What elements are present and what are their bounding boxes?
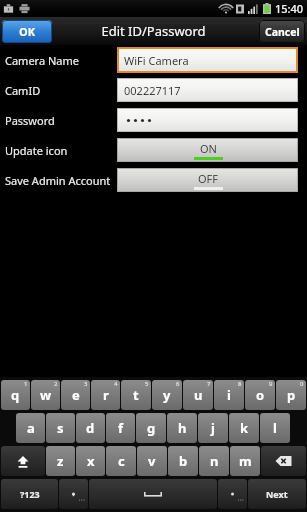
- button[interactable]: v: [137, 446, 167, 476]
- button[interactable]: ?123: [1, 479, 58, 509]
- button[interactable]: [117, 108, 298, 132]
- button[interactable]: Toggle OFF: [117, 168, 298, 192]
- staticText: d: [86, 419, 95, 437]
- staticText: y: [163, 386, 171, 404]
- button[interactable]: Shift: [1, 446, 45, 476]
- staticText: l: [273, 419, 277, 437]
- button[interactable]: 0: [276, 380, 306, 410]
- staticText: t: [133, 386, 139, 404]
- staticText: 9: [269, 380, 273, 388]
- staticText: WiFi Camera: [124, 53, 189, 68]
- button[interactable]: m: [230, 446, 260, 476]
- staticText: b: [179, 452, 188, 470]
- staticText: z: [57, 452, 64, 470]
- button[interactable]: 2: [31, 380, 60, 410]
- button[interactable]: z: [46, 446, 75, 476]
- staticText: Edit ID/Password: [101, 22, 206, 40]
- staticText: 002227117: [124, 83, 181, 98]
- staticText: Cancel: [265, 25, 300, 39]
- button[interactable]: b: [168, 446, 198, 476]
- staticText: a: [27, 419, 35, 437]
- staticText: h: [178, 419, 187, 437]
- button[interactable]: Next: [248, 479, 306, 509]
- button[interactable]: l: [260, 413, 290, 443]
- button[interactable]: Space: [89, 479, 217, 509]
- staticText: OK: [19, 24, 36, 39]
- staticText: OFF: [198, 171, 219, 186]
- staticText: Update icon: [5, 143, 68, 158]
- staticText: 7: [207, 380, 211, 388]
- button[interactable]: Toggle ON: [117, 138, 298, 162]
- staticText: 0: [300, 380, 304, 388]
- staticText: p: [287, 386, 296, 404]
- staticText: w: [40, 386, 52, 404]
- button[interactable]: 6: [152, 380, 182, 410]
- button[interactable]: c: [106, 446, 136, 476]
- button[interactable]: 7: [183, 380, 213, 410]
- staticText: g: [147, 419, 156, 437]
- staticText: 6: [176, 380, 180, 388]
- button[interactable]: 8: [214, 380, 244, 410]
- staticText: Next: [266, 488, 288, 500]
- button[interactable]: k: [229, 413, 259, 443]
- staticText: v: [148, 452, 156, 470]
- button[interactable]: j: [198, 413, 228, 443]
- staticText: u: [194, 386, 203, 404]
- button[interactable]: x: [76, 446, 105, 476]
- button[interactable]: d: [76, 413, 105, 443]
- staticText: m: [239, 452, 252, 470]
- staticText: 4: [114, 380, 118, 388]
- button[interactable]: Comma: [59, 479, 88, 509]
- staticText: j: [211, 419, 215, 437]
- staticText: Save Admin Account: [5, 173, 111, 188]
- button[interactable]: g: [136, 413, 166, 443]
- button[interactable]: 1: [1, 380, 30, 410]
- staticText: x: [87, 452, 95, 470]
- button[interactable]: OK: [2, 20, 52, 43]
- staticText: o: [256, 386, 265, 404]
- staticText: 3: [84, 380, 88, 388]
- staticText: 1: [24, 380, 28, 388]
- staticText: ?123: [20, 488, 40, 500]
- button[interactable]: Cancel: [259, 20, 305, 43]
- staticText: e: [72, 386, 80, 404]
- staticText: f: [118, 419, 124, 437]
- staticText: ON: [200, 141, 217, 156]
- button[interactable]: s: [46, 413, 75, 443]
- staticText: Password: [5, 113, 55, 128]
- staticText: r: [103, 386, 109, 404]
- button[interactable]: 4: [91, 380, 120, 410]
- button[interactable]: a: [16, 413, 45, 443]
- staticText: 2: [54, 380, 58, 388]
- staticText: 8: [238, 380, 242, 388]
- staticText: c: [118, 452, 125, 470]
- button[interactable]: Period: [218, 479, 247, 509]
- staticText: k: [240, 419, 249, 437]
- button[interactable]: 9: [245, 380, 275, 410]
- staticText: 5: [145, 380, 149, 388]
- staticText: Camera Name: [5, 53, 79, 68]
- button[interactable]: h: [167, 413, 197, 443]
- staticText: 15:40: [275, 1, 304, 16]
- button[interactable]: 002227117: [117, 78, 298, 102]
- button[interactable]: 5: [121, 380, 151, 410]
- staticText: s: [57, 419, 64, 437]
- staticText: CamID: [5, 83, 41, 98]
- button[interactable]: WiFi Camera: [117, 47, 298, 73]
- staticText: n: [210, 452, 219, 470]
- button[interactable]: f: [106, 413, 135, 443]
- button[interactable]: n: [199, 446, 229, 476]
- staticText: q: [11, 386, 20, 404]
- button[interactable]: Delete: [261, 446, 306, 476]
- staticText: i: [227, 386, 231, 404]
- button[interactable]: 3: [61, 380, 90, 410]
